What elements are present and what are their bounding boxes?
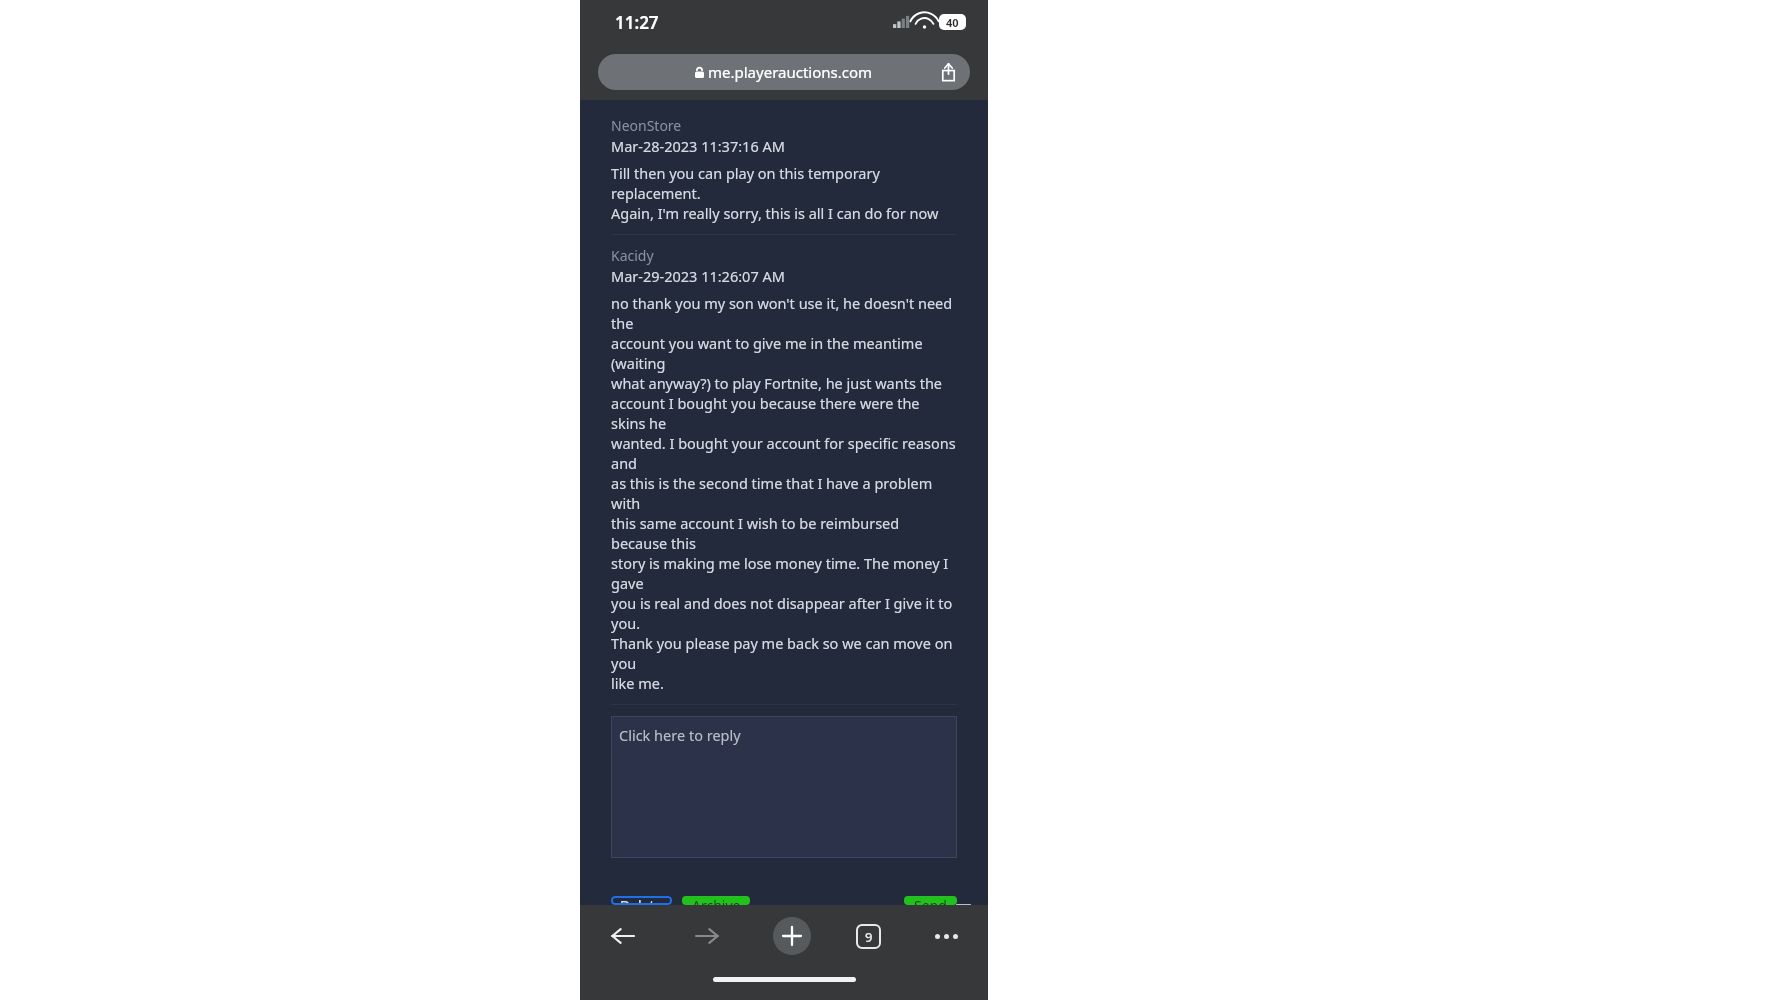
button[interactable]: Tabs bbox=[856, 924, 881, 949]
button[interactable]: Send bbox=[904, 896, 957, 905]
staticText: Send bbox=[914, 896, 947, 905]
button[interactable]: Share bbox=[936, 60, 960, 84]
staticText: NeonStore bbox=[611, 116, 682, 135]
staticText: what anyway?) to play Fortnite, he just … bbox=[611, 373, 943, 393]
button[interactable]: Forward bbox=[687, 916, 727, 956]
staticText: Delete bbox=[620, 896, 663, 905]
staticText: this same account I wish to be reimburse… bbox=[611, 513, 957, 553]
staticText: Mar-29-2023 11:26:07 AM bbox=[611, 266, 785, 286]
staticText: account you want to give me in the meant… bbox=[611, 333, 957, 373]
staticText: me.playerauctions.com bbox=[708, 62, 873, 82]
staticText: Mar-28-2023 11:37:16 AM bbox=[611, 136, 785, 156]
button[interactable]: New tab bbox=[773, 917, 811, 955]
staticText: Archive bbox=[692, 896, 741, 905]
staticText: wanted. I bought your account for specif… bbox=[611, 433, 957, 473]
staticText: 11:27 bbox=[615, 11, 659, 34]
staticText: Click here to reply bbox=[619, 725, 741, 745]
button[interactable]: Back bbox=[602, 916, 642, 956]
button[interactable]: Delete bbox=[611, 896, 672, 905]
staticText: like me. bbox=[611, 673, 664, 693]
button[interactable]: More bbox=[926, 916, 966, 956]
staticText: 9 bbox=[865, 928, 873, 946]
button[interactable]: me.playerauctions.com bbox=[598, 54, 970, 90]
button[interactable]: Archive bbox=[682, 896, 750, 905]
staticText: no thank you my son won't use it, he doe… bbox=[611, 293, 957, 333]
staticText: 40 bbox=[946, 15, 959, 30]
staticText: you is real and does not disappear after… bbox=[611, 593, 957, 633]
button[interactable]: Click here to reply bbox=[611, 716, 957, 858]
staticText: Thank you please pay me back so we can m… bbox=[611, 633, 957, 673]
staticText: story is making me lose money time. The … bbox=[611, 553, 957, 593]
staticText: Till then you can play on this temporary… bbox=[611, 163, 957, 203]
staticText: as this is the second time that I have a… bbox=[611, 473, 957, 513]
staticText: Again, I'm really sorry, this is all I c… bbox=[611, 203, 939, 223]
staticText: account I bought you because there were … bbox=[611, 393, 957, 433]
staticText: Kacidy bbox=[611, 246, 654, 265]
